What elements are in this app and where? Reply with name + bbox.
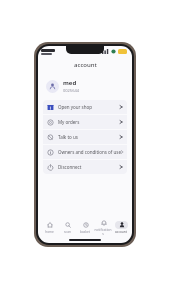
staticText: Owners and conditions of use	[58, 149, 121, 155]
staticText: scan	[64, 230, 71, 234]
staticText: account	[115, 230, 127, 234]
staticText: notifications	[94, 228, 112, 236]
button[interactable]: account	[112, 217, 130, 237]
button[interactable]: scan	[58, 217, 76, 237]
button[interactable]: basket	[76, 217, 94, 237]
button[interactable]: home	[40, 217, 58, 237]
button[interactable]: My orders	[43, 115, 127, 129]
button[interactable]: Owners and conditions of use	[43, 145, 127, 159]
staticText: My orders	[58, 119, 80, 125]
button[interactable]: med	[44, 76, 126, 96]
staticText: Talk to us	[58, 134, 78, 140]
button[interactable]: Disconnect	[43, 160, 127, 174]
staticText: Disconnect	[58, 164, 82, 170]
button[interactable]: notifications	[94, 217, 112, 237]
staticText: Open your shop	[58, 104, 93, 110]
staticText: basket	[80, 230, 90, 234]
button[interactable]: Talk to us	[43, 130, 127, 144]
staticText: med	[63, 79, 77, 87]
staticText: account	[74, 61, 97, 69]
staticText: home	[45, 230, 54, 234]
button[interactable]: Open your shop	[43, 100, 127, 114]
staticText: 0025644	[63, 88, 80, 93]
